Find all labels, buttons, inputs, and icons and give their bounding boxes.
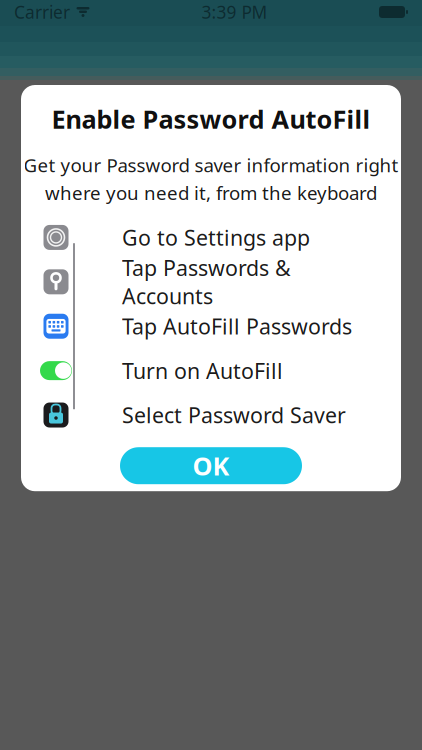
staticText: OK bbox=[192, 449, 229, 482]
staticText: Turn on AutoFill bbox=[122, 356, 283, 385]
staticText: Carrier bbox=[14, 0, 70, 23]
staticText: Go to Settings app bbox=[122, 223, 310, 252]
button[interactable]: OK bbox=[120, 447, 302, 484]
staticText: Tap AutoFill Passwords bbox=[122, 312, 352, 340]
staticText: Select Password Saver bbox=[122, 401, 346, 429]
staticText: Enable Password AutoFill bbox=[51, 102, 370, 136]
staticText: Get your Password saver information righ… bbox=[23, 153, 398, 177]
staticText: Tap Passwords & Accounts bbox=[122, 253, 291, 310]
staticText: 3:39 PM bbox=[201, 0, 267, 23]
staticText: where you need it, from the keyboard bbox=[45, 180, 377, 205]
